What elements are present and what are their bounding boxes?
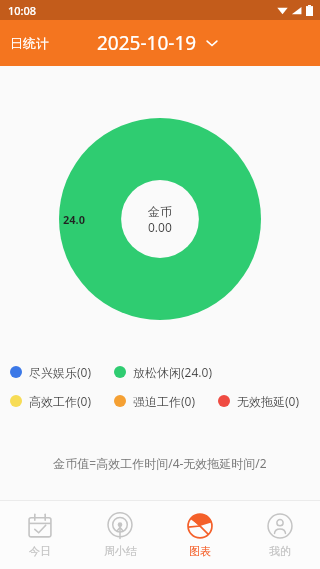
button[interactable]: 2025-10-19 xyxy=(97,30,219,56)
staticText: 图表 xyxy=(189,544,211,558)
staticText: 尽兴娱乐(0) xyxy=(29,364,92,380)
button[interactable]: 尽兴娱乐(0) xyxy=(10,364,92,380)
button[interactable]: 今日 xyxy=(0,501,80,569)
staticText: 我的 xyxy=(269,544,291,558)
button[interactable]: 放松休闲(24.0) xyxy=(114,364,213,380)
staticText: 周小结 xyxy=(104,544,137,558)
button[interactable]: 周小结 xyxy=(80,501,160,569)
button[interactable]: 我的 xyxy=(240,501,320,569)
staticText: 24.0 xyxy=(63,212,85,227)
button[interactable]: 强迫工作(0) xyxy=(114,393,196,409)
staticText: 无效拖延(0) xyxy=(237,393,300,409)
staticText: 2025-10-19 xyxy=(97,30,197,56)
staticText: 金币值=高效工作时间/4-无效拖延时间/2 xyxy=(0,455,320,471)
staticText: 0.00 xyxy=(148,219,172,235)
button[interactable]: 高效工作(0) xyxy=(10,393,92,409)
button[interactable]: 日统计 xyxy=(10,35,49,51)
staticText: 强迫工作(0) xyxy=(133,393,196,409)
button[interactable]: 图表 xyxy=(160,501,240,569)
staticText: 金币 xyxy=(148,204,172,219)
staticText: 放松休闲(24.0) xyxy=(133,364,213,380)
other: Select date xyxy=(205,36,219,50)
staticText: 高效工作(0) xyxy=(29,393,92,409)
staticText: 今日 xyxy=(29,544,51,558)
button[interactable]: 无效拖延(0) xyxy=(218,393,300,409)
staticText: 10:08 xyxy=(8,3,37,18)
